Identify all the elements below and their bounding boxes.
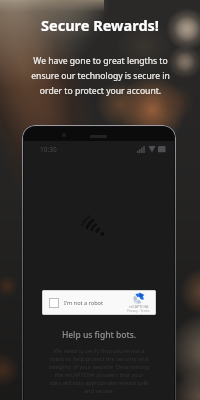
staticText: Privacy - Terms bbox=[127, 309, 150, 313]
staticText: I'm not a robot bbox=[64, 299, 104, 307]
staticText: Secure Rewards! bbox=[41, 15, 159, 35]
staticText: Help us fight bots. bbox=[24, 329, 174, 341]
staticText: reCAPTCHA bbox=[129, 304, 149, 309]
staticText: We have gone to great lengths to ensure … bbox=[31, 55, 170, 96]
button[interactable]: I'm not a robot bbox=[42, 290, 156, 315]
staticText: We need to verify that you're not a robo… bbox=[48, 347, 150, 395]
staticText: 10:30 bbox=[40, 145, 57, 154]
